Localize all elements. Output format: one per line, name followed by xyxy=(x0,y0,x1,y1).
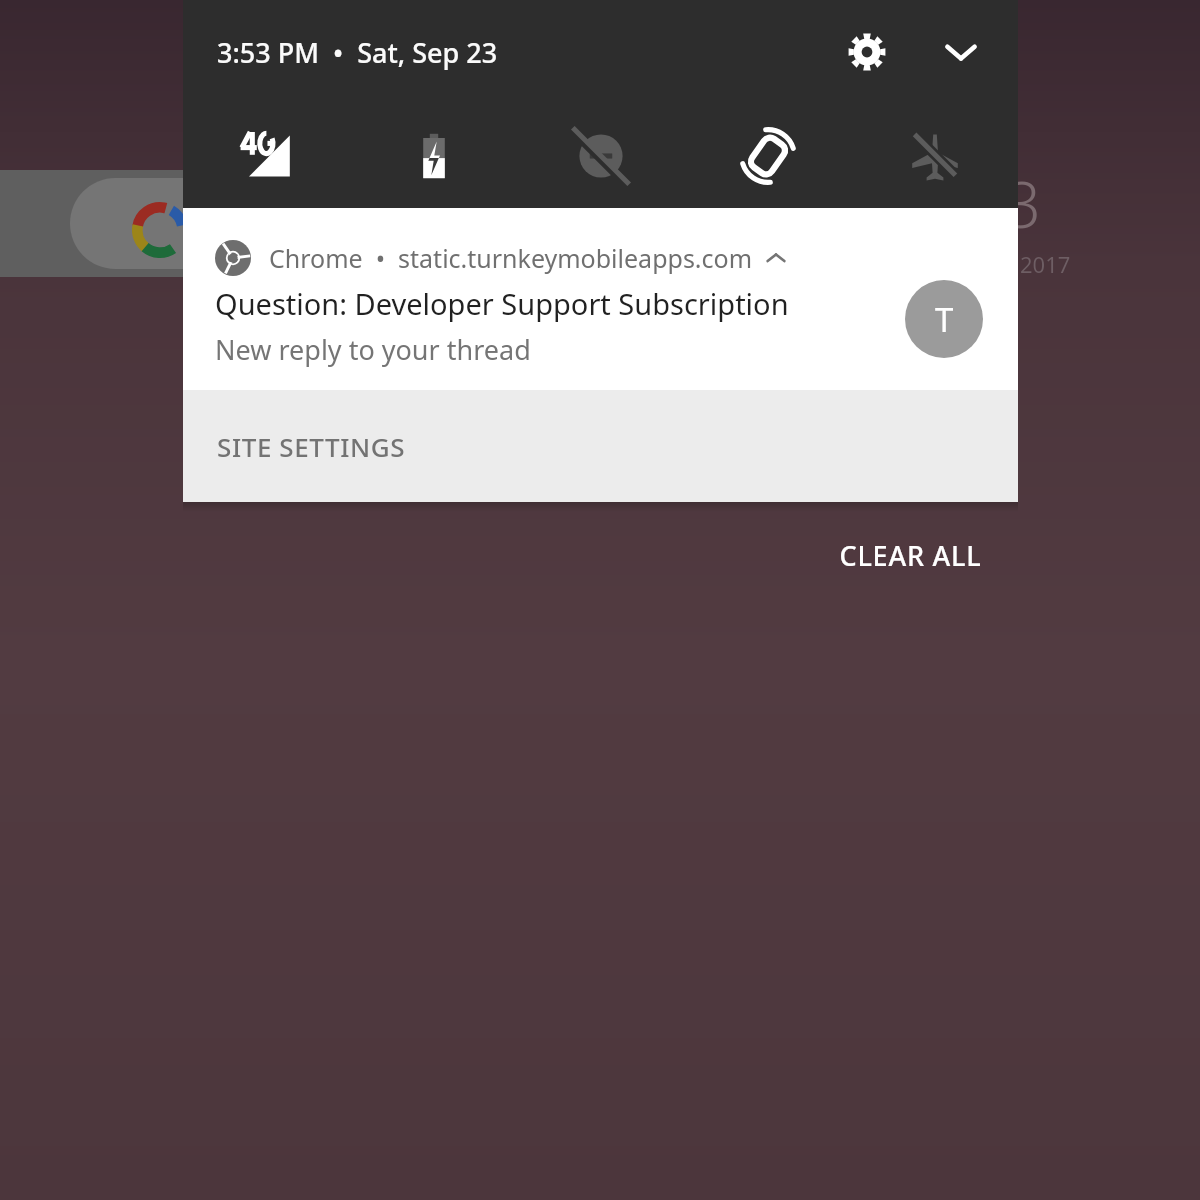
button[interactable] xyxy=(0,170,330,277)
staticText: 23 xyxy=(968,160,1042,247)
button[interactable]: CLEAR ALL xyxy=(800,516,1020,594)
staticText: CLEAR ALL xyxy=(839,537,982,574)
staticText: New reply to your thread xyxy=(215,331,531,368)
staticText: Question: Developer Support Subscription xyxy=(215,284,789,323)
button[interactable]: Mobile network xyxy=(183,104,350,208)
button[interactable]: Chrome • static.turnkeymobileapps.com xyxy=(183,208,1018,390)
staticText: SITE SETTINGS xyxy=(217,429,406,464)
button[interactable]: SITE SETTINGS xyxy=(201,390,535,502)
button[interactable]: Expand xyxy=(932,23,990,81)
staticText: 2017 xyxy=(1020,249,1071,279)
button[interactable]: Settings xyxy=(838,23,896,81)
button[interactable]: Auto rotate xyxy=(684,104,851,208)
staticText: 3:53 PM • Sat, Sep 23 xyxy=(217,34,498,71)
button[interactable]: Battery charging xyxy=(350,104,517,208)
staticText: T xyxy=(935,297,954,342)
staticText: Chrome • static.turnkeymobileapps.com xyxy=(269,241,753,275)
button[interactable]: Airplane mode off xyxy=(851,104,1018,208)
button[interactable]: Do not disturb xyxy=(517,104,684,208)
